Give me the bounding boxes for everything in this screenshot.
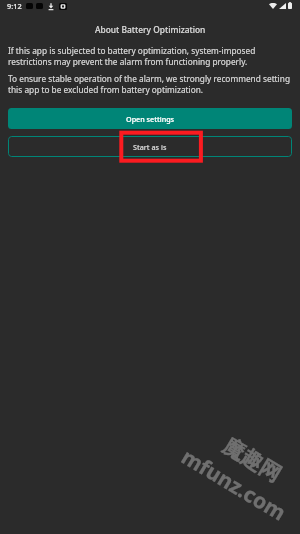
other: Wi-Fi bbox=[269, 3, 277, 9]
staticText: To ensure stable operation of the alarm,… bbox=[8, 73, 292, 95]
button[interactable]: Start as is bbox=[8, 136, 292, 157]
staticText: Start as is bbox=[133, 142, 167, 152]
other: Mobile signal bbox=[279, 3, 286, 9]
staticText: If this app is subjected to battery opti… bbox=[8, 45, 292, 67]
other: Battery bbox=[288, 2, 292, 9]
other: Downloading bbox=[48, 3, 54, 10]
staticText: About Battery Optimization bbox=[95, 24, 206, 35]
staticText: mfunz.com bbox=[176, 442, 291, 527]
staticText: 魔趣网 bbox=[218, 433, 286, 488]
staticText: 9:12 bbox=[7, 1, 22, 11]
button[interactable]: Open settings bbox=[8, 108, 292, 129]
staticText: Open settings bbox=[126, 114, 175, 124]
